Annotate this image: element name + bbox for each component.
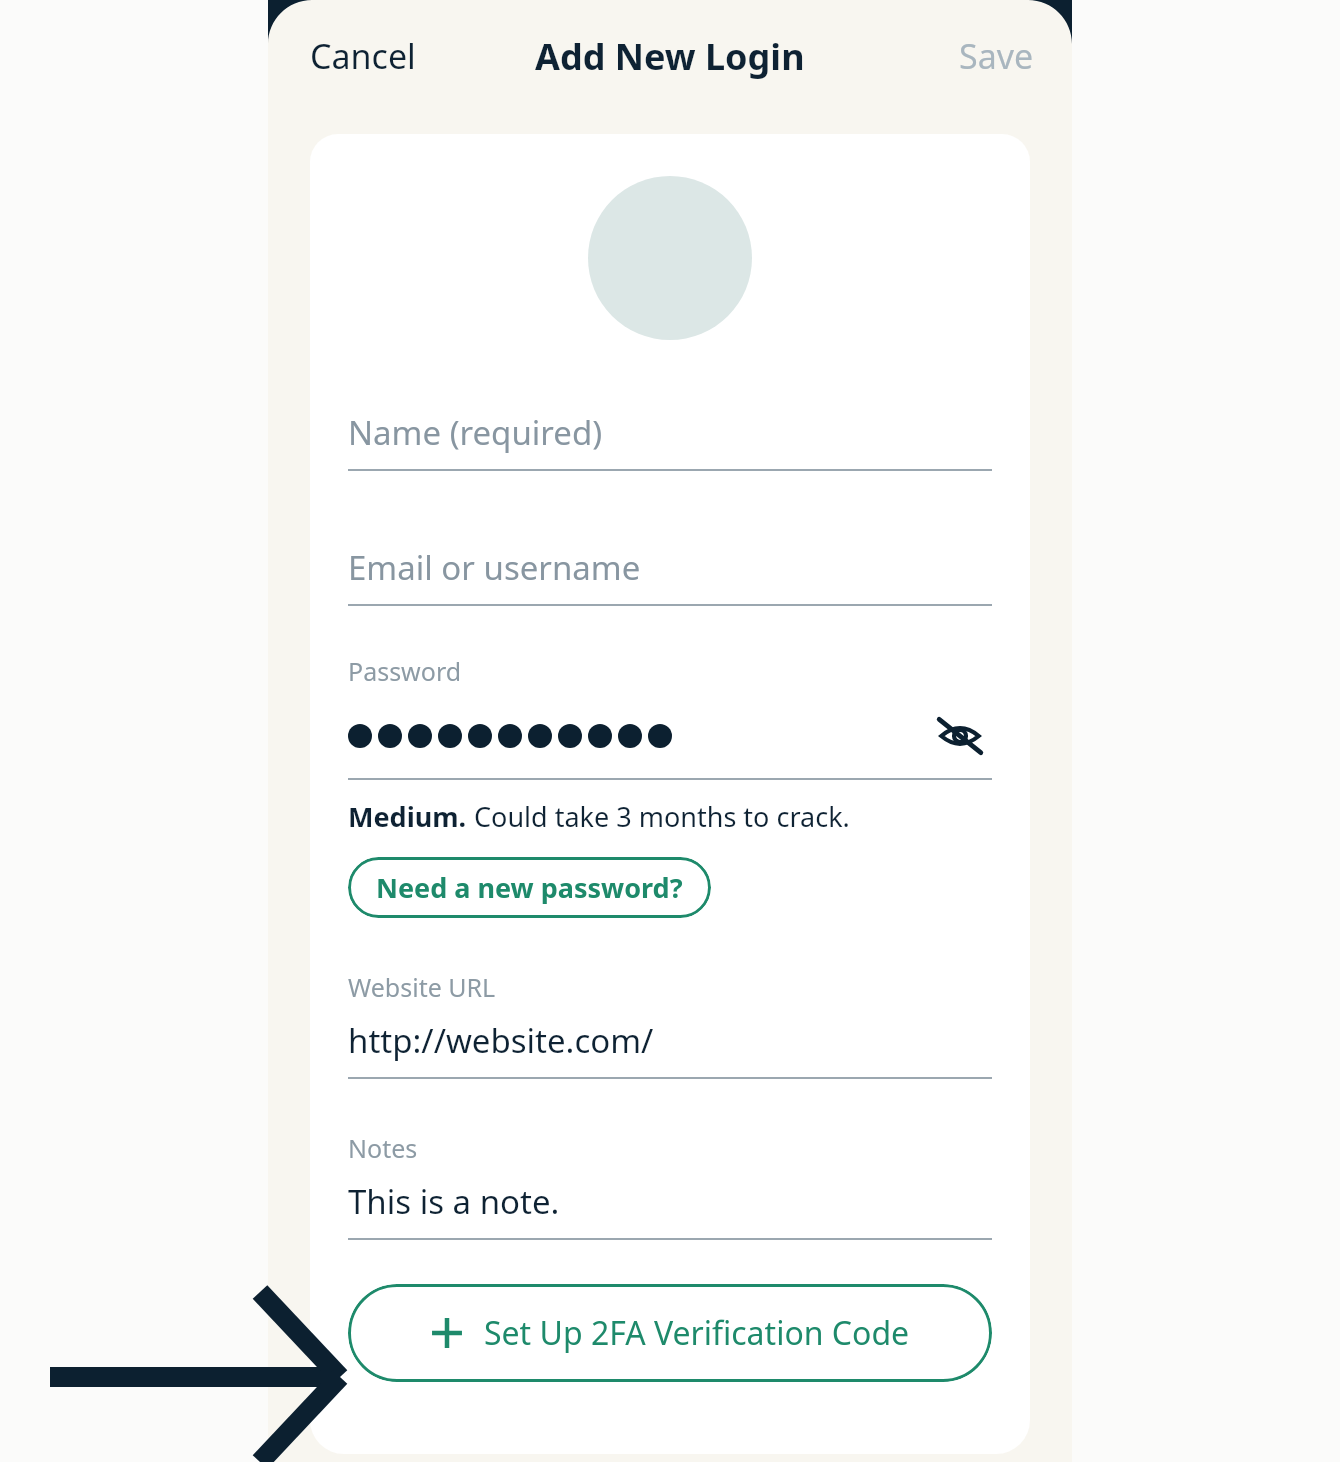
button[interactable]: Choose icon <box>588 176 752 340</box>
staticText: Could take 3 months to crack. <box>467 798 850 835</box>
staticText: Add New Login <box>535 32 805 81</box>
button[interactable]: Show password <box>928 704 992 768</box>
button[interactable]: Website URL <box>348 970 992 1079</box>
staticText: http://website.com/ <box>348 1018 654 1063</box>
staticText: Medium. <box>348 798 467 835</box>
staticText: Need a new password? <box>376 869 683 906</box>
button[interactable]: Cancel <box>288 23 438 89</box>
button[interactable]: Notes <box>348 1131 992 1240</box>
button[interactable]: Save <box>941 23 1052 89</box>
staticText: Email or username <box>348 545 641 590</box>
button[interactable]: Need a new password? <box>348 857 711 918</box>
staticText: Save <box>959 33 1034 79</box>
staticText: Notes <box>348 1131 418 1165</box>
staticText: This is a note. <box>348 1179 560 1224</box>
staticText: Set Up 2FA Verification Code <box>484 1311 910 1355</box>
staticText: Cancel <box>310 33 416 79</box>
button[interactable]: Set Up 2FA Verification Code <box>348 1284 992 1382</box>
staticText: Website URL <box>348 970 496 1004</box>
button[interactable]: Name (required) <box>348 410 992 471</box>
staticText: Name (required) <box>348 410 603 455</box>
staticText: Password <box>348 654 462 688</box>
button[interactable]: Email or username <box>348 545 992 606</box>
